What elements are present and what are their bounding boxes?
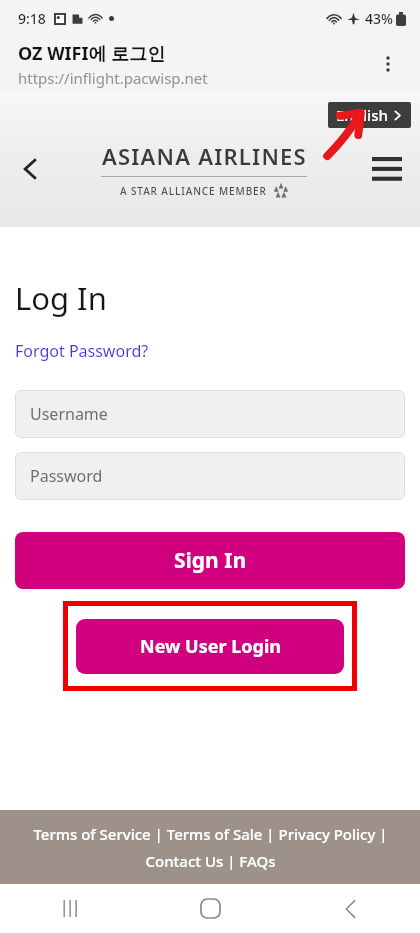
staticText: Username xyxy=(30,403,108,425)
staticText: OZ WIFI에 로그인 xyxy=(18,41,166,66)
button[interactable]: Forgot Password? xyxy=(15,340,149,362)
staticText: New User Login xyxy=(140,634,281,659)
staticText: English xyxy=(336,105,388,125)
button[interactable]: New User Login xyxy=(76,619,344,674)
staticText: https://inflight.pacwisp.net xyxy=(18,68,208,88)
staticText: Log In xyxy=(15,277,107,319)
button[interactable]: Contact Us | FAQs xyxy=(145,851,276,871)
button[interactable]: Sign In xyxy=(15,532,405,589)
button[interactable]: Home xyxy=(182,884,238,933)
staticText: Sign In xyxy=(174,546,247,575)
button[interactable]: Menu xyxy=(364,146,410,192)
staticText: 43% xyxy=(365,9,393,28)
staticText: Password xyxy=(30,465,103,487)
button[interactable]: Back xyxy=(322,884,378,933)
button[interactable]: English xyxy=(328,102,411,128)
button[interactable]: Back xyxy=(8,147,52,191)
button[interactable]: Terms of Service | Terms of Sale | Priva… xyxy=(33,824,388,844)
button[interactable]: Username xyxy=(15,390,405,438)
button[interactable]: Recents xyxy=(42,884,98,933)
staticText: ASIANA AIRLINES xyxy=(102,141,307,171)
staticText: 9:18 xyxy=(18,9,46,28)
button[interactable]: More options xyxy=(368,44,408,84)
button[interactable]: Password xyxy=(15,452,405,500)
staticText: A STAR ALLIANCE MEMBER xyxy=(120,184,267,198)
